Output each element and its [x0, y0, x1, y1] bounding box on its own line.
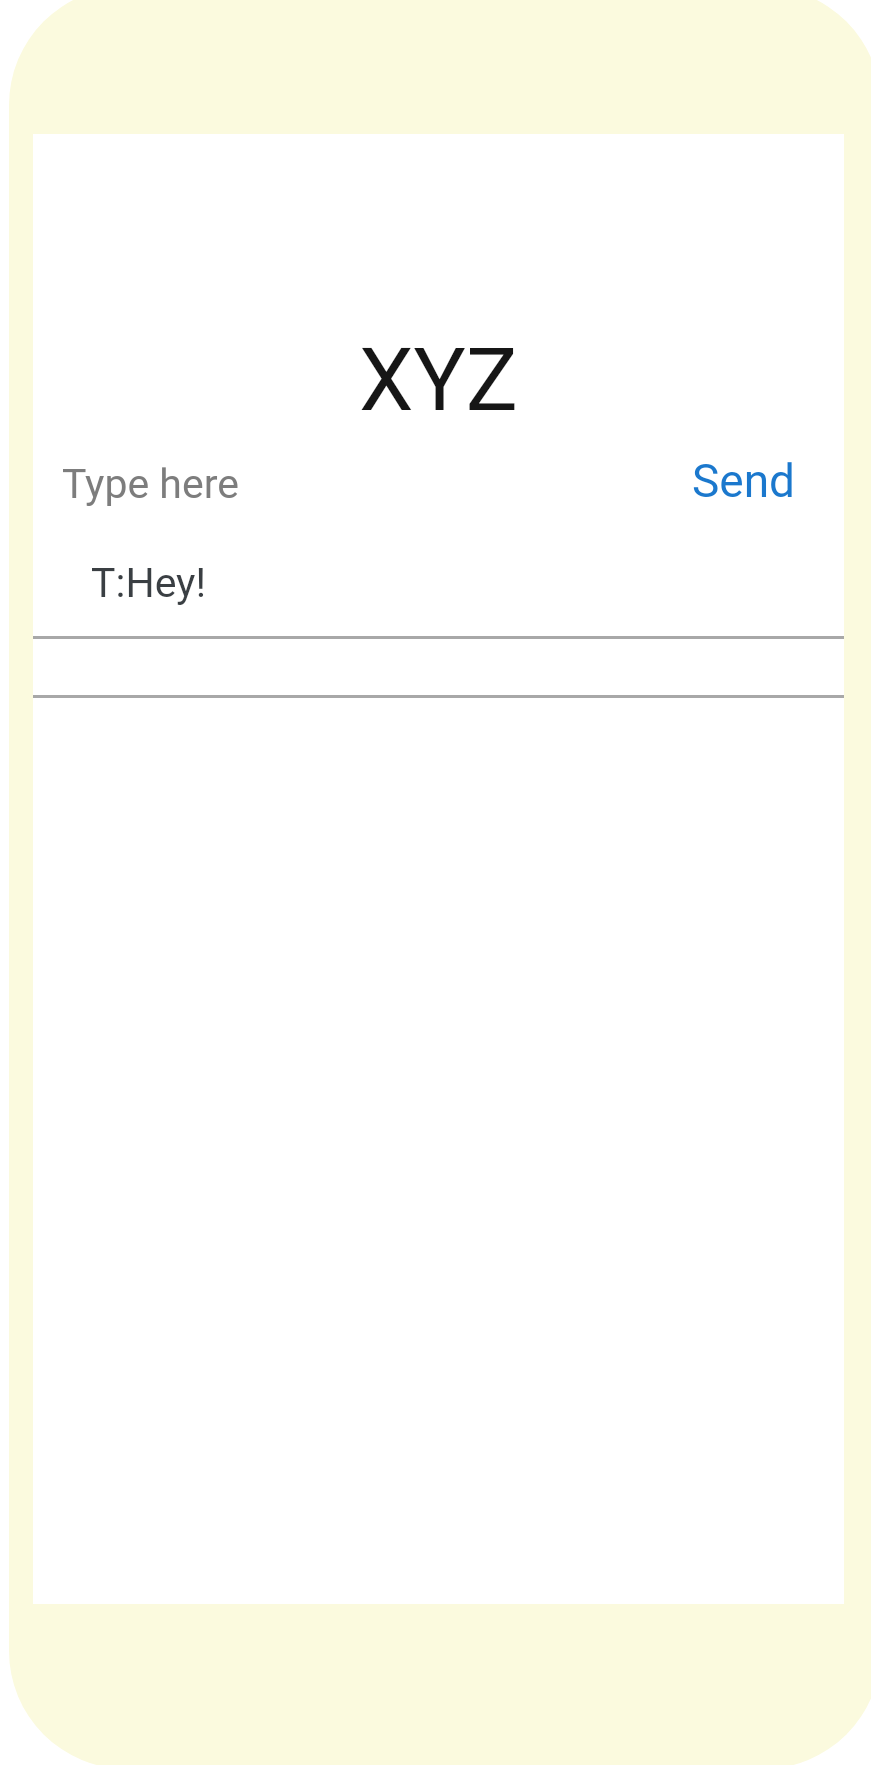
button[interactable]: Type here — [33, 438, 674, 508]
staticText: XYZ — [33, 329, 844, 431]
button[interactable]: Send — [674, 438, 844, 508]
button[interactable]: T:Hey! — [33, 559, 844, 607]
staticText: T:Hey! — [91, 559, 207, 607]
staticText: Type here — [62, 460, 239, 508]
staticText: Send — [692, 454, 796, 508]
